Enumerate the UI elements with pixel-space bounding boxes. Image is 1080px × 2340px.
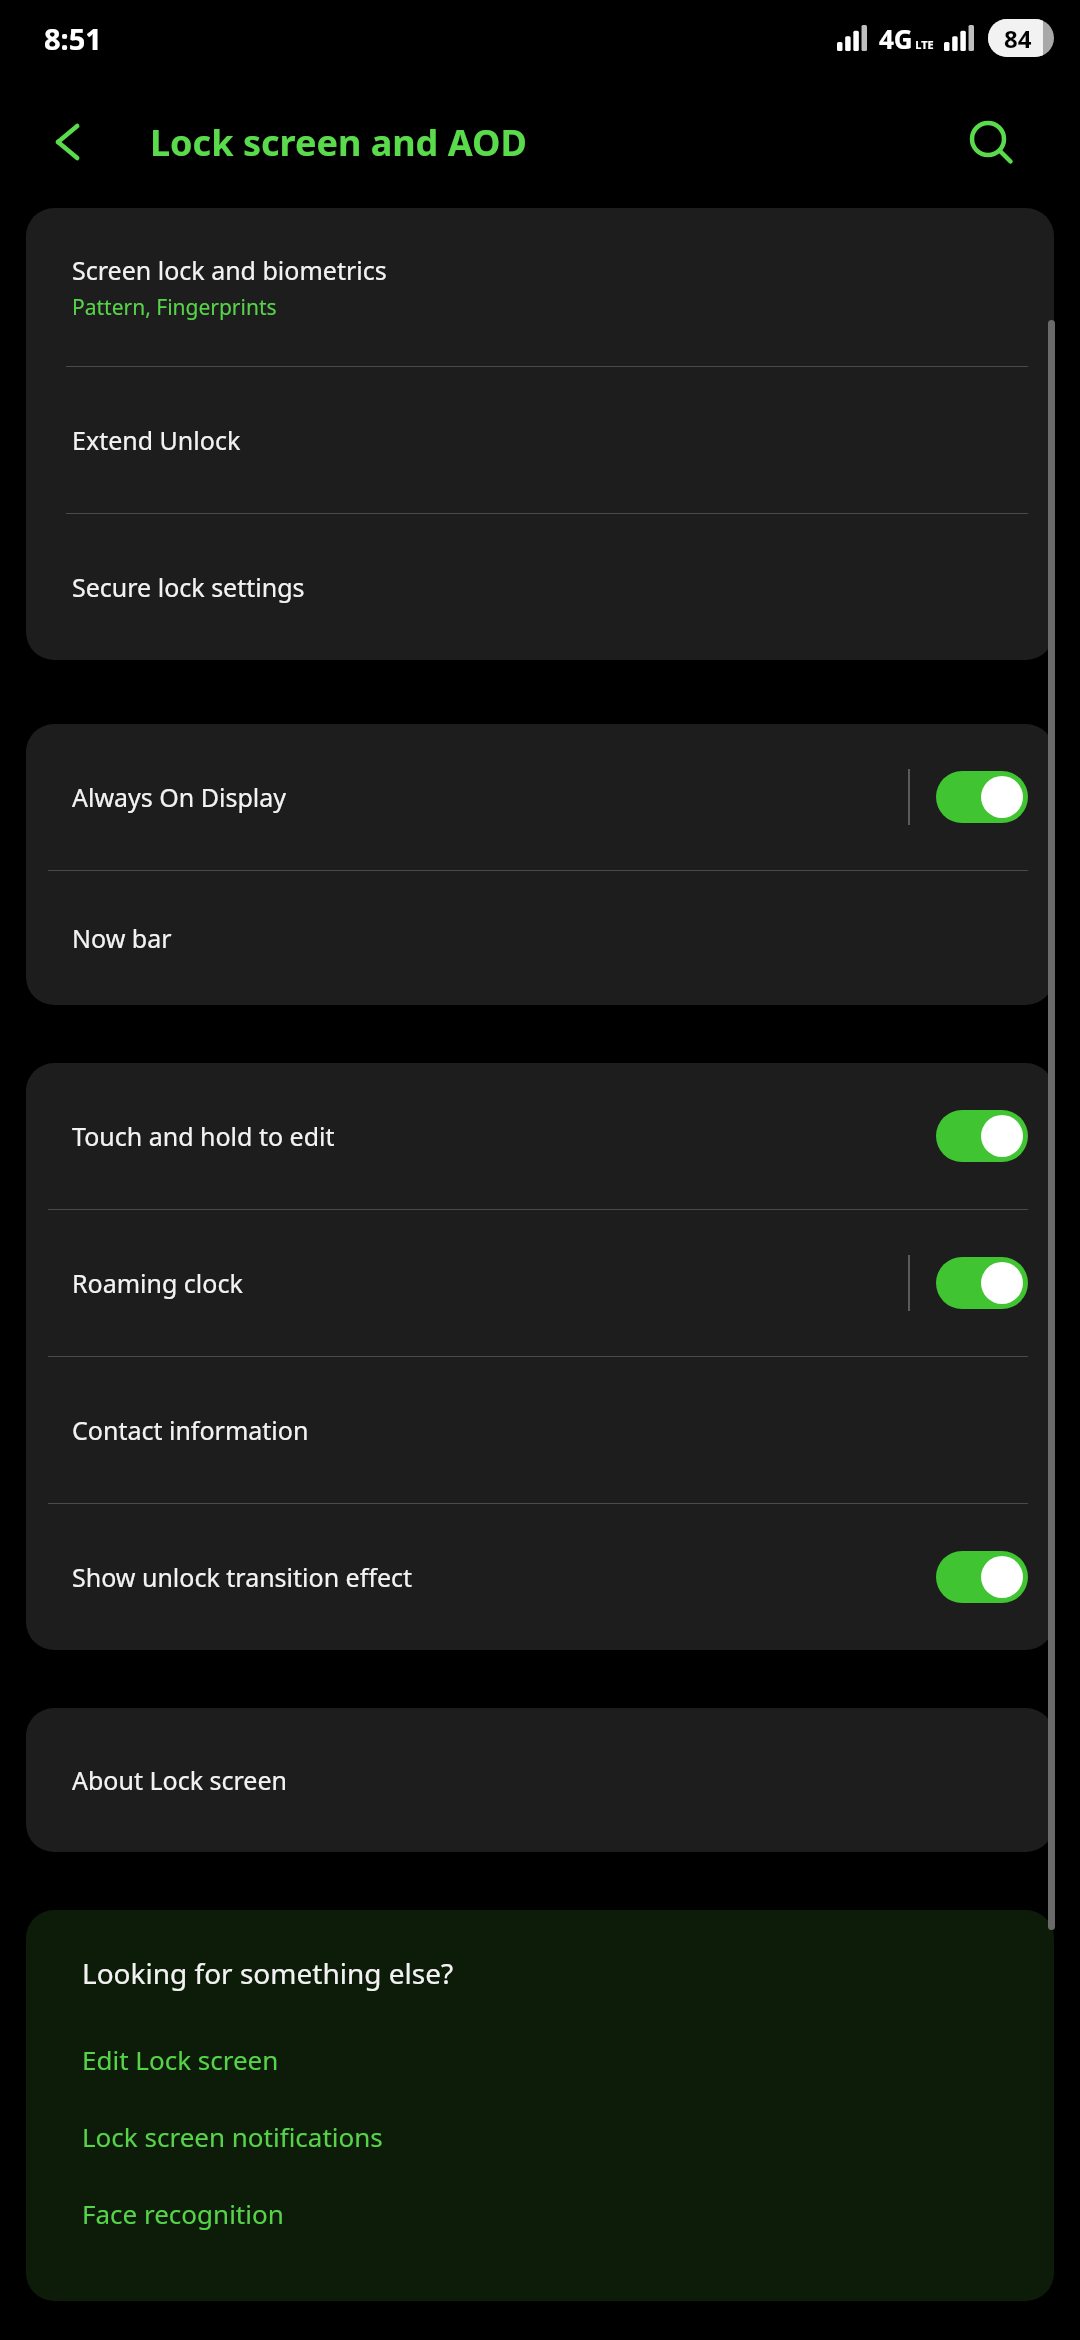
button[interactable] bbox=[936, 1110, 1054, 1162]
staticText: Always On Display bbox=[72, 780, 287, 814]
staticText: Extend Unlock bbox=[72, 423, 241, 457]
staticText: Lock screen notifications bbox=[82, 2119, 383, 2154]
staticText: Contact information bbox=[72, 1413, 309, 1447]
staticText: 4G bbox=[879, 21, 913, 56]
button[interactable]: Show unlock transition effect bbox=[26, 1504, 1054, 1650]
staticText: LTE bbox=[915, 37, 934, 52]
staticText: Looking for something else? bbox=[82, 1954, 454, 1992]
staticText: Lock screen and AOD bbox=[150, 118, 527, 167]
staticText: Roaming clock bbox=[72, 1266, 243, 1300]
staticText: 84 bbox=[1004, 22, 1032, 55]
button[interactable]: Extend Unlock bbox=[26, 367, 1054, 513]
staticText: Screen lock and biometrics bbox=[72, 253, 387, 287]
staticText: Touch and hold to edit bbox=[72, 1119, 335, 1153]
staticText: Pattern, Fingerprints bbox=[72, 293, 277, 322]
staticText: About Lock screen bbox=[72, 1763, 287, 1797]
staticText: Secure lock settings bbox=[72, 570, 305, 604]
button[interactable]: Touch and hold to edit bbox=[26, 1063, 1054, 1209]
button[interactable]: Secure lock settings bbox=[26, 514, 1054, 660]
button[interactable]: Contact information bbox=[26, 1357, 1054, 1503]
button[interactable]: Now bar bbox=[26, 871, 1054, 1005]
button[interactable] bbox=[936, 771, 1054, 823]
staticText: Now bar bbox=[72, 921, 172, 955]
button[interactable]: Search bbox=[958, 110, 1022, 174]
button[interactable]: Edit Lock screen bbox=[26, 2032, 1054, 2087]
button[interactable]: Roaming clock bbox=[26, 1210, 1054, 1356]
button[interactable]: Screen lock and biometrics bbox=[26, 208, 1054, 366]
button[interactable]: About Lock screen bbox=[26, 1708, 1054, 1852]
staticText: Edit Lock screen bbox=[82, 2042, 279, 2077]
button[interactable]: Back bbox=[30, 110, 94, 174]
button[interactable] bbox=[936, 1551, 1054, 1603]
button[interactable]: Face recognition bbox=[26, 2186, 1054, 2241]
staticText: Show unlock transition effect bbox=[72, 1560, 413, 1594]
button[interactable]: Lock screen notifications bbox=[26, 2109, 1054, 2164]
button[interactable] bbox=[936, 1257, 1054, 1309]
staticText: Face recognition bbox=[82, 2196, 284, 2231]
staticText: 8:51 bbox=[44, 19, 102, 58]
button[interactable]: Always On Display bbox=[26, 724, 1054, 870]
